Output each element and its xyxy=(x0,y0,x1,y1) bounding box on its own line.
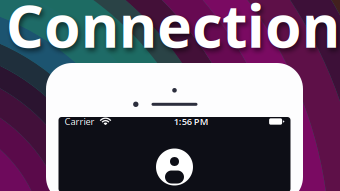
staticText: Connection xyxy=(6,0,340,64)
staticText: Carrier xyxy=(64,115,94,128)
staticText: 1:56 PM xyxy=(174,115,209,128)
